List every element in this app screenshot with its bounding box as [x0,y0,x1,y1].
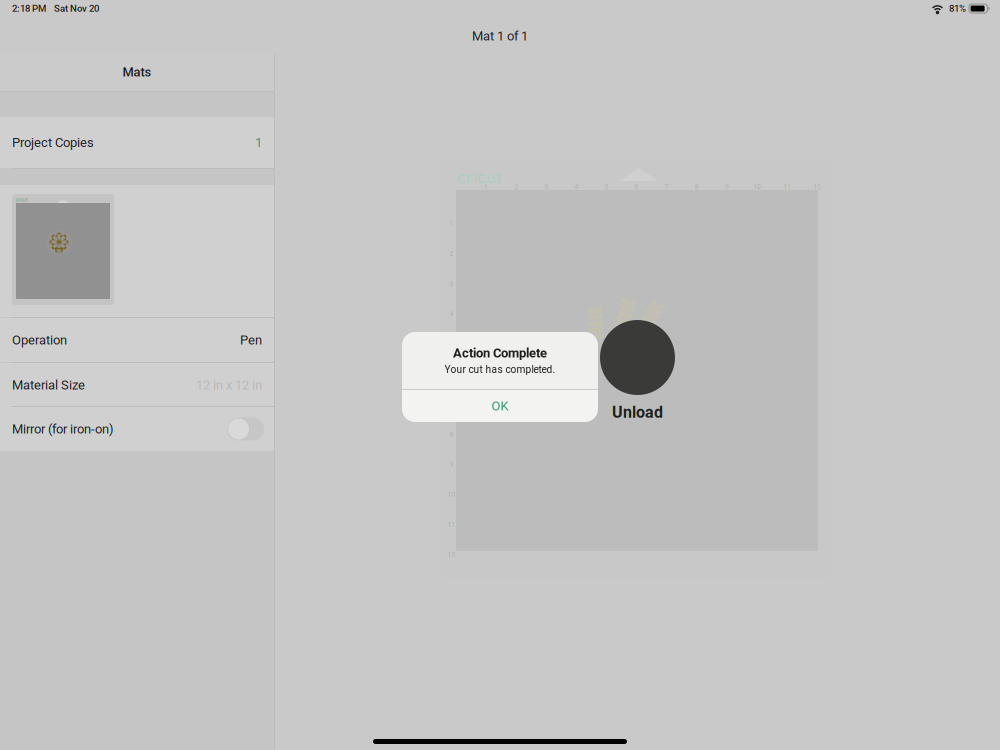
staticText: 9 [449,460,453,468]
staticText: 2 [514,183,518,191]
staticText: cricut [16,197,28,203]
staticText: 6 [635,183,639,191]
staticText: Mirror (for iron-on) [12,421,114,437]
staticText: 10 [447,490,455,498]
staticText: 1 [255,135,262,150]
staticText: 3 [449,280,453,288]
staticText: Operation [12,332,67,348]
staticText: Action Complete [453,345,547,361]
staticText: 11 [783,183,791,191]
button[interactable]: Material Size [0,363,274,407]
staticText: Unload [612,403,663,422]
staticText: Material Size [12,377,85,393]
button[interactable]: OK [402,390,598,422]
staticText: Your cut has completed. [444,364,555,375]
staticText: cricut [457,166,502,188]
staticText: 5 [604,183,608,191]
staticText: 1 [484,183,488,191]
staticText: Mats [122,64,151,80]
staticText: 11 [447,520,455,529]
staticText: 4 [574,183,578,191]
staticText: 6 [449,370,453,378]
staticText: 9 [725,183,729,191]
staticText: 2:18 PM [12,3,46,14]
staticText: 12 [813,183,821,191]
staticText: 12 in x 12 in [196,377,262,393]
staticText: Project Copies [12,135,94,150]
staticText: Mat 1 of 1 [472,28,528,44]
staticText: 3 [544,183,548,191]
staticText: 8 [695,183,699,191]
staticText: 10 [753,183,761,191]
staticText: 12 [447,551,455,559]
button[interactable]: Project Copies [0,117,274,168]
button[interactable]: Unload [600,320,675,422]
staticText: OK [491,398,508,414]
button[interactable]: Mirror (for iron-on) [0,407,274,451]
staticText: 8 [449,430,453,438]
staticText: Pen [240,332,262,348]
staticText: Sat Nov 20 [54,3,99,14]
button[interactable]: Operation [0,318,274,362]
staticText: 81% [949,3,966,14]
staticText: 7 [665,183,669,191]
staticText: 4 [449,310,453,318]
staticText: 1 [449,219,453,228]
staticText: 2 [449,250,453,258]
